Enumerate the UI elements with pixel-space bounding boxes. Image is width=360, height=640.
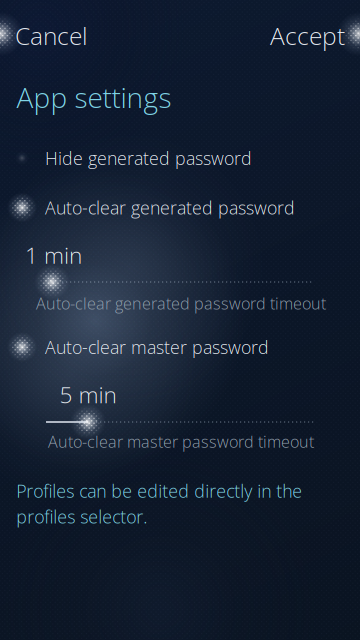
staticText: Cancel <box>15 19 88 52</box>
button[interactable]: Hide generated password <box>0 136 360 180</box>
staticText: Hide generated password <box>45 146 252 170</box>
staticText: App settings <box>16 78 171 116</box>
staticText: 5 min <box>59 379 116 410</box>
staticText: Auto-clear generated password timeout <box>36 292 326 314</box>
staticText: Profiles can be edited directly in the <box>16 479 302 503</box>
button[interactable]: Cancel <box>15 11 135 59</box>
staticText: profiles selector. <box>16 504 147 529</box>
button[interactable]: Auto-clear generated password <box>0 185 360 229</box>
staticText: Auto-clear master password <box>45 335 269 359</box>
staticText: Auto-clear master password timeout <box>48 430 314 452</box>
button[interactable]: Auto-clear master password <box>0 325 360 369</box>
staticText: 1 min <box>25 240 82 270</box>
staticText: Auto-clear generated password <box>45 195 295 219</box>
staticText: Accept <box>270 19 345 52</box>
button[interactable]: Accept <box>225 11 345 59</box>
